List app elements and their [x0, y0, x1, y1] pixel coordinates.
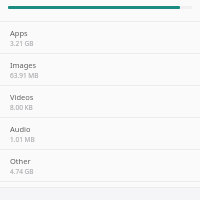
button[interactable]: Apps: [0, 22, 200, 53]
staticText: Apps: [10, 28, 28, 38]
staticText: 63.91 MB: [10, 71, 39, 80]
staticText: Videos: [10, 92, 34, 102]
button[interactable]: Other: [0, 150, 200, 181]
staticText: Other: [10, 156, 31, 166]
staticText: Images: [10, 60, 37, 70]
staticText: 1.01 MB: [10, 135, 35, 144]
staticText: 4.74 GB: [10, 167, 34, 176]
staticText: 8.00 KB: [10, 103, 33, 112]
button[interactable]: Videos: [0, 86, 200, 117]
button[interactable]: Audio: [0, 118, 200, 149]
staticText: 3.21 GB: [10, 39, 34, 48]
staticText: Audio: [10, 124, 31, 134]
button[interactable]: Images: [0, 54, 200, 85]
